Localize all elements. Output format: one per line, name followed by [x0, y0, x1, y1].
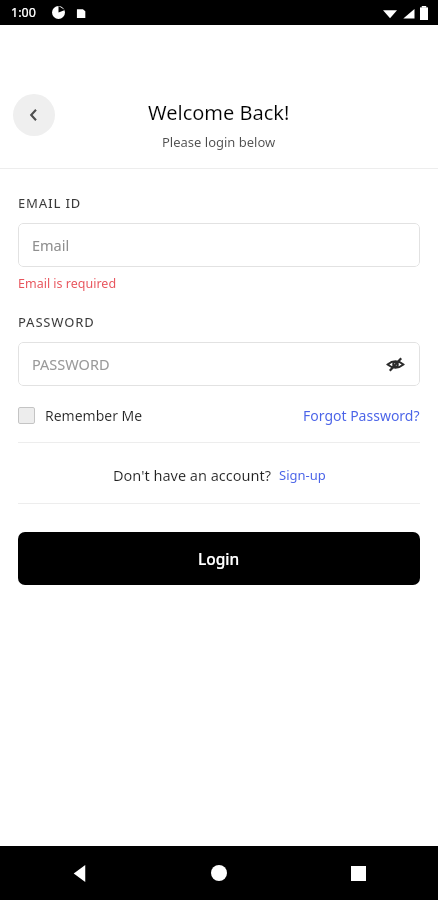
button[interactable]: PASSWORD	[18, 342, 420, 386]
staticText: Please login below	[162, 133, 276, 151]
staticText: Email	[32, 235, 70, 255]
button[interactable]: Back	[60, 853, 100, 893]
button[interactable]: Sign-up	[279, 466, 326, 484]
button[interactable]: Back	[13, 94, 55, 136]
staticText: Login	[198, 548, 240, 569]
staticText: Forgot Password?	[303, 406, 420, 425]
button[interactable]: Login	[18, 532, 420, 585]
button[interactable]: Show password	[382, 351, 408, 377]
staticText: Email is required	[18, 275, 117, 292]
staticText: Don't have an account?	[113, 465, 271, 485]
staticText: EMAIL ID	[18, 194, 82, 212]
button[interactable]: Email	[18, 223, 420, 267]
staticText: 1:00	[11, 4, 36, 21]
staticText: Sign-up	[279, 466, 326, 484]
button[interactable]: Remember Me	[18, 406, 143, 425]
button[interactable]: Forgot Password?	[303, 406, 420, 425]
staticText: PASSWORD	[32, 354, 110, 374]
staticText: PASSWORD	[18, 313, 95, 331]
staticText: Welcome Back!	[148, 99, 290, 126]
button[interactable]: Home	[199, 853, 239, 893]
staticText: Remember Me	[45, 406, 143, 425]
button[interactable]: Recent apps	[338, 853, 378, 893]
